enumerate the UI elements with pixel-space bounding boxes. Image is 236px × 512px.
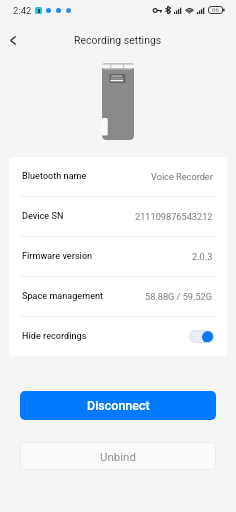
staticText: Disconnect [87, 398, 150, 413]
button[interactable]: Firmware version [9, 237, 227, 276]
staticText: 58.88G / 59.52G [145, 291, 213, 302]
button[interactable]: Disconnect [20, 391, 216, 420]
staticText: 2:42 [13, 5, 32, 16]
staticText: Bluetooth name [22, 171, 87, 182]
staticText: Device SN [22, 211, 64, 222]
button[interactable]: Back [2, 29, 24, 51]
button[interactable]: Bluetooth name [9, 157, 227, 196]
button[interactable]: Device SN [9, 197, 227, 236]
staticText: Hide recordings [22, 331, 87, 342]
staticText: Unbind [100, 450, 136, 463]
staticText: Firmware version [22, 251, 93, 262]
staticText: Voice Recorder [151, 171, 213, 182]
staticText: Recording settings [74, 34, 162, 46]
button[interactable]: Space management [9, 277, 227, 316]
staticText: Space management [22, 291, 104, 302]
button[interactable]: Unbind [20, 442, 216, 470]
staticText: 2.0.3 [192, 251, 213, 262]
staticText: 66 [212, 6, 219, 14]
staticText: 211109876543212 [135, 211, 213, 222]
button[interactable]: Hide recordings [9, 317, 227, 356]
